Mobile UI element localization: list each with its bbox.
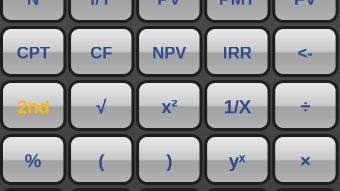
- button[interactable]: PV: [136, 0, 202, 23]
- staticText: CPT: [17, 43, 50, 62]
- button[interactable]: [272, 188, 339, 191]
- button[interactable]: ×: [272, 134, 339, 185]
- button[interactable]: [68, 188, 134, 191]
- staticText: yˣ: [229, 150, 246, 171]
- button[interactable]: PMT: [204, 0, 271, 23]
- button[interactable]: %: [0, 134, 66, 185]
- staticText: 1/X: [224, 96, 251, 117]
- button[interactable]: ): [136, 134, 202, 185]
- staticText: I/Y: [90, 0, 112, 8]
- button[interactable]: [136, 188, 202, 191]
- staticText: N: [27, 0, 40, 8]
- button[interactable]: CF: [68, 26, 134, 77]
- staticText: (: [98, 150, 104, 171]
- staticText: √: [96, 96, 106, 117]
- staticText: CF: [90, 43, 112, 62]
- button[interactable]: ÷: [272, 80, 339, 131]
- button[interactable]: CPT: [0, 26, 66, 77]
- button[interactable]: (: [68, 134, 134, 185]
- button[interactable]: N: [0, 0, 66, 23]
- button[interactable]: √: [68, 80, 134, 131]
- button[interactable]: IRR: [204, 26, 271, 77]
- staticText: PMT: [219, 0, 256, 8]
- staticText: NPV: [152, 43, 186, 62]
- button[interactable]: 1/X: [204, 80, 271, 131]
- button[interactable]: [204, 188, 271, 191]
- staticText: 2nd: [17, 96, 49, 117]
- staticText: FV: [294, 0, 317, 8]
- staticText: %: [25, 150, 42, 171]
- button[interactable]: FV: [272, 0, 339, 23]
- button[interactable]: <-: [272, 26, 339, 77]
- staticText: x²: [161, 96, 177, 117]
- button[interactable]: NPV: [136, 26, 202, 77]
- button[interactable]: x²: [136, 80, 202, 131]
- staticText: ×: [300, 150, 311, 171]
- staticText: ): [166, 150, 172, 171]
- button[interactable]: I/Y: [68, 0, 134, 23]
- staticText: PV: [157, 0, 181, 8]
- button[interactable]: 2nd: [0, 80, 66, 131]
- button[interactable]: yˣ: [204, 134, 271, 185]
- staticText: ÷: [300, 96, 310, 117]
- staticText: <-: [297, 43, 313, 62]
- button[interactable]: [0, 188, 66, 191]
- staticText: IRR: [223, 43, 252, 62]
